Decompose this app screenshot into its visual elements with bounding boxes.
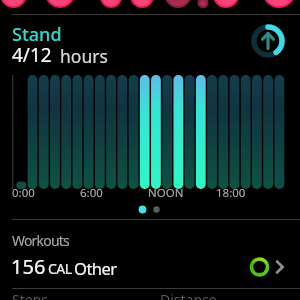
staticText: Steps <box>12 290 48 300</box>
button[interactable] <box>0 246 300 286</box>
staticText: hours <box>60 44 108 68</box>
button[interactable] <box>10 68 292 216</box>
staticText: 0:00 <box>12 185 35 201</box>
staticText: 6:00 <box>80 185 103 201</box>
staticText: 18:00 <box>216 185 246 201</box>
staticText: CAL <box>48 259 72 278</box>
button[interactable] <box>249 22 287 60</box>
staticText: NOON <box>148 185 184 201</box>
staticText: Other <box>74 257 117 279</box>
staticText: Workouts <box>12 231 69 250</box>
staticText: 156 <box>11 253 46 280</box>
staticText: 4/12 <box>12 42 52 68</box>
staticText: Distance <box>160 290 217 300</box>
staticText: Stand <box>12 22 62 47</box>
